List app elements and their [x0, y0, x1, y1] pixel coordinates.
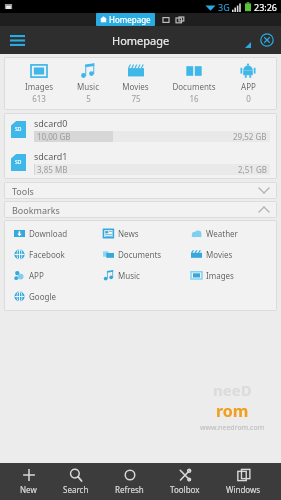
button[interactable]: Tabs	[175, 15, 185, 25]
staticText: sdcard0	[34, 117, 68, 129]
staticText: Tools	[12, 185, 34, 197]
button[interactable]: Refresh	[109, 466, 150, 497]
button[interactable]: Google	[8, 286, 97, 307]
button[interactable]: Tools	[4, 182, 277, 199]
staticText: Weather	[206, 228, 238, 239]
staticText: News	[118, 228, 139, 239]
staticText: APP	[29, 270, 44, 281]
button[interactable]: Facebook	[8, 244, 97, 265]
staticText: Bookmarks	[12, 204, 60, 216]
staticText: Windows	[226, 484, 261, 495]
staticText: SD	[15, 159, 22, 166]
button[interactable]: APP	[8, 265, 97, 286]
button[interactable]: Close	[253, 26, 281, 54]
button[interactable]: Download	[8, 223, 97, 244]
staticText: Homepage	[109, 14, 151, 25]
staticText: 3,85 MB	[37, 164, 68, 175]
staticText: neeD	[213, 380, 252, 400]
staticText: Music	[118, 270, 140, 281]
staticText: APP	[241, 81, 256, 92]
button[interactable]: Music	[97, 265, 185, 286]
staticText: Images	[25, 81, 53, 92]
staticText: Homepage	[112, 33, 170, 48]
staticText: 613	[32, 93, 46, 104]
staticText: 75	[131, 93, 141, 104]
button[interactable]: SD	[4, 146, 277, 179]
button[interactable]: Toolbox	[164, 466, 206, 497]
button[interactable]: Weather	[185, 223, 273, 244]
button[interactable]: SD	[4, 113, 277, 146]
button[interactable]: Documents	[97, 244, 185, 265]
staticText: 16	[189, 93, 199, 104]
staticText: 3G	[218, 1, 230, 13]
staticText: Movies	[122, 81, 149, 92]
staticText: 29,52 GB	[233, 131, 267, 142]
staticText: Google	[29, 291, 56, 302]
staticText: Facebook	[29, 249, 65, 260]
staticText: Documents	[172, 81, 216, 92]
staticText: Images	[206, 270, 234, 281]
staticText: Music	[77, 81, 99, 92]
staticText: www.needrom.com	[200, 423, 265, 433]
staticText: Download	[29, 228, 68, 239]
button[interactable]: New tab	[161, 15, 171, 25]
button[interactable]: New	[14, 466, 43, 497]
button[interactable]: Images	[23, 62, 55, 105]
staticText: 5	[86, 93, 91, 104]
button[interactable]: Menu	[0, 26, 34, 54]
staticText: rom	[216, 400, 249, 422]
button[interactable]: Windows	[220, 466, 267, 497]
button[interactable]: Music	[75, 62, 101, 105]
staticText: sdcard1	[34, 150, 68, 162]
staticText: 0	[246, 93, 251, 104]
staticText: New	[20, 484, 37, 495]
button[interactable]: Movies	[185, 244, 273, 265]
staticText: Toolbox	[170, 484, 200, 495]
staticText: Movies	[206, 249, 233, 260]
button[interactable]: Documents	[170, 62, 218, 105]
staticText: 10,00 GB	[37, 131, 71, 142]
staticText: 23:26	[254, 1, 278, 13]
button[interactable]: Homepage	[96, 13, 155, 26]
staticText: Refresh	[115, 484, 144, 495]
button[interactable]: APP	[238, 62, 258, 105]
staticText: SD	[15, 126, 22, 133]
staticText: Documents	[118, 249, 162, 260]
staticText: 2,51 GB	[238, 164, 267, 175]
button[interactable]: Bookmarks	[4, 201, 277, 218]
staticText: Search	[63, 484, 89, 495]
button[interactable]: Movies	[120, 62, 151, 105]
button[interactable]: Images	[185, 265, 273, 286]
button[interactable]: News	[97, 223, 185, 244]
button[interactable]: Search	[57, 466, 95, 497]
